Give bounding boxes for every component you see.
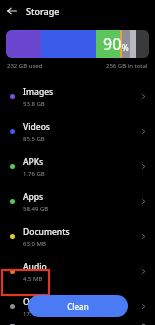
button[interactable]: 90	[6, 30, 149, 58]
button[interactable]: Other	[0, 289, 155, 324]
staticText: 90	[103, 33, 122, 55]
staticText: Images	[23, 86, 54, 98]
staticText: Storage	[26, 5, 60, 17]
button[interactable]: Apps	[0, 184, 155, 219]
staticText: APKs	[23, 156, 44, 168]
button[interactable]: Back	[4, 3, 20, 19]
staticText: Audio	[23, 261, 47, 273]
staticText: 85.5 GB	[23, 135, 45, 143]
button[interactable]: Clean	[28, 295, 128, 317]
staticText: 1.76 GB	[23, 170, 45, 178]
button[interactable]: APKs	[0, 149, 155, 184]
button[interactable]: System	[0, 324, 155, 325]
staticText: Documents	[23, 226, 70, 238]
button[interactable]: Videos	[0, 114, 155, 149]
staticText: Apps	[23, 191, 44, 203]
button[interactable]: Images	[0, 79, 155, 114]
button[interactable]: Documents	[0, 219, 155, 254]
button[interactable]: Audio	[0, 254, 155, 289]
staticText: 63.0 MB	[23, 240, 46, 248]
staticText: Clean	[67, 301, 89, 312]
staticText: Other	[23, 296, 47, 308]
staticText: Videos	[23, 121, 50, 133]
staticText: 53.8 GB	[23, 100, 45, 108]
staticText: 17.1 GB	[23, 310, 45, 318]
staticText: %	[122, 42, 129, 53]
staticText: 232 GB used	[7, 62, 43, 70]
staticText: 256 GB in total	[106, 62, 148, 70]
staticText: 4.5 MB	[23, 275, 43, 283]
staticText: 58.49 GB	[23, 205, 49, 213]
